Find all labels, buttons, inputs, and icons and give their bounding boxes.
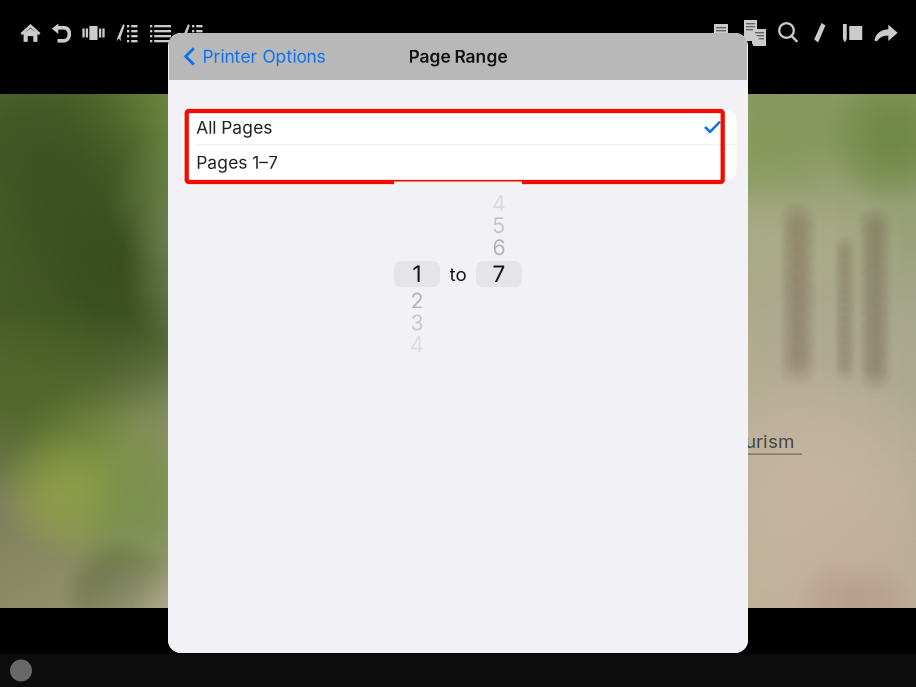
staticText: Page Range	[408, 46, 507, 67]
button[interactable]: Notes	[177, 11, 207, 55]
button[interactable]: Annotate	[110, 11, 144, 55]
staticText: 2	[410, 288, 423, 314]
staticText: 6	[492, 235, 505, 260]
staticText: 7	[492, 260, 505, 288]
button[interactable]: Search	[773, 11, 805, 55]
staticText: 3	[410, 310, 423, 336]
staticText: 4	[492, 191, 506, 216]
staticText: 5	[492, 213, 505, 238]
staticText: 4	[410, 332, 424, 358]
button[interactable]: 1	[394, 261, 440, 287]
staticText: to	[449, 263, 466, 285]
button[interactable]: Insert media	[835, 11, 869, 55]
button[interactable]: Pages 1–7	[182, 145, 736, 179]
staticText: All Pages	[196, 117, 272, 138]
staticText: 1	[412, 260, 421, 288]
button[interactable]: Undo	[46, 11, 77, 55]
button[interactable]: Duplicate	[737, 11, 773, 55]
button[interactable]: Share	[869, 11, 903, 55]
button[interactable]: Outline	[144, 11, 177, 55]
staticText: Printer Options	[202, 46, 325, 67]
button[interactable]: Pages	[705, 11, 737, 55]
staticText: Enotourism	[695, 430, 794, 453]
staticText: Pages 1–7	[196, 152, 278, 173]
button[interactable]: 7	[476, 261, 522, 287]
button[interactable]: All Pages	[182, 110, 736, 144]
button[interactable]: Filmstrip	[77, 11, 110, 55]
button[interactable]: Home	[15, 11, 46, 55]
button[interactable]: Printer Options	[169, 33, 469, 80]
button[interactable]: Highlighter	[805, 11, 835, 55]
